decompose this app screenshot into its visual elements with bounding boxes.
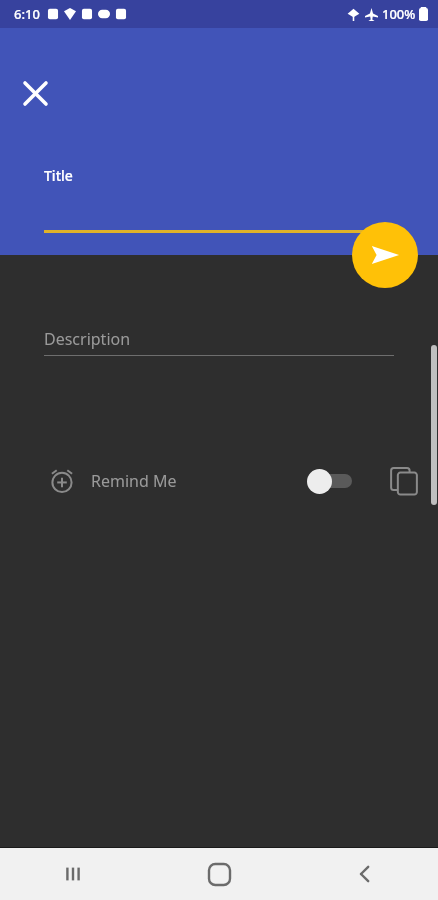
button[interactable]: Send: [352, 222, 418, 288]
button[interactable]: Remind Me: [0, 453, 438, 509]
button[interactable]: Copy: [382, 459, 426, 503]
button[interactable]: Remind Me toggle: [302, 463, 358, 499]
staticText: Title: [44, 166, 73, 185]
staticText: 100%: [382, 5, 416, 23]
button[interactable]: Back: [292, 848, 438, 900]
button[interactable]: Recent apps: [0, 848, 146, 900]
button[interactable]: Home: [146, 848, 292, 900]
staticText: Description: [44, 328, 131, 350]
staticText: Remind Me: [91, 470, 177, 492]
button[interactable]: Close: [16, 74, 54, 112]
staticText: 6:10: [14, 5, 40, 23]
